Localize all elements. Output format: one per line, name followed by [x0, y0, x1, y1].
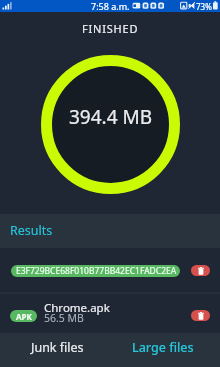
staticText: E3F729BCE68F010B77BB42EC1FADC2EA: [16, 265, 177, 277]
staticText: Chrome.apk: [44, 300, 110, 316]
staticText: 73%: [196, 1, 212, 12]
staticText: FINISHED: [82, 21, 139, 36]
staticText: APK: [16, 311, 32, 322]
button[interactable]: Delete: [191, 310, 210, 321]
button[interactable]: E3F729BCE68F010B77BB42EC1FADC2EA: [0, 248, 220, 293]
staticText: 394.4 MB: [69, 104, 153, 130]
staticText: Large files: [132, 339, 194, 356]
staticText: Junk files: [31, 339, 84, 356]
staticText: 7:58 a.m.: [91, 0, 130, 12]
staticText: Results: [10, 222, 53, 239]
staticText: 56.5 MB: [44, 311, 84, 325]
button[interactable]: Large files: [110, 333, 220, 367]
button[interactable]: Delete: [191, 265, 210, 276]
button[interactable]: Junk files: [0, 333, 110, 367]
button[interactable]: APK: [0, 293, 220, 338]
